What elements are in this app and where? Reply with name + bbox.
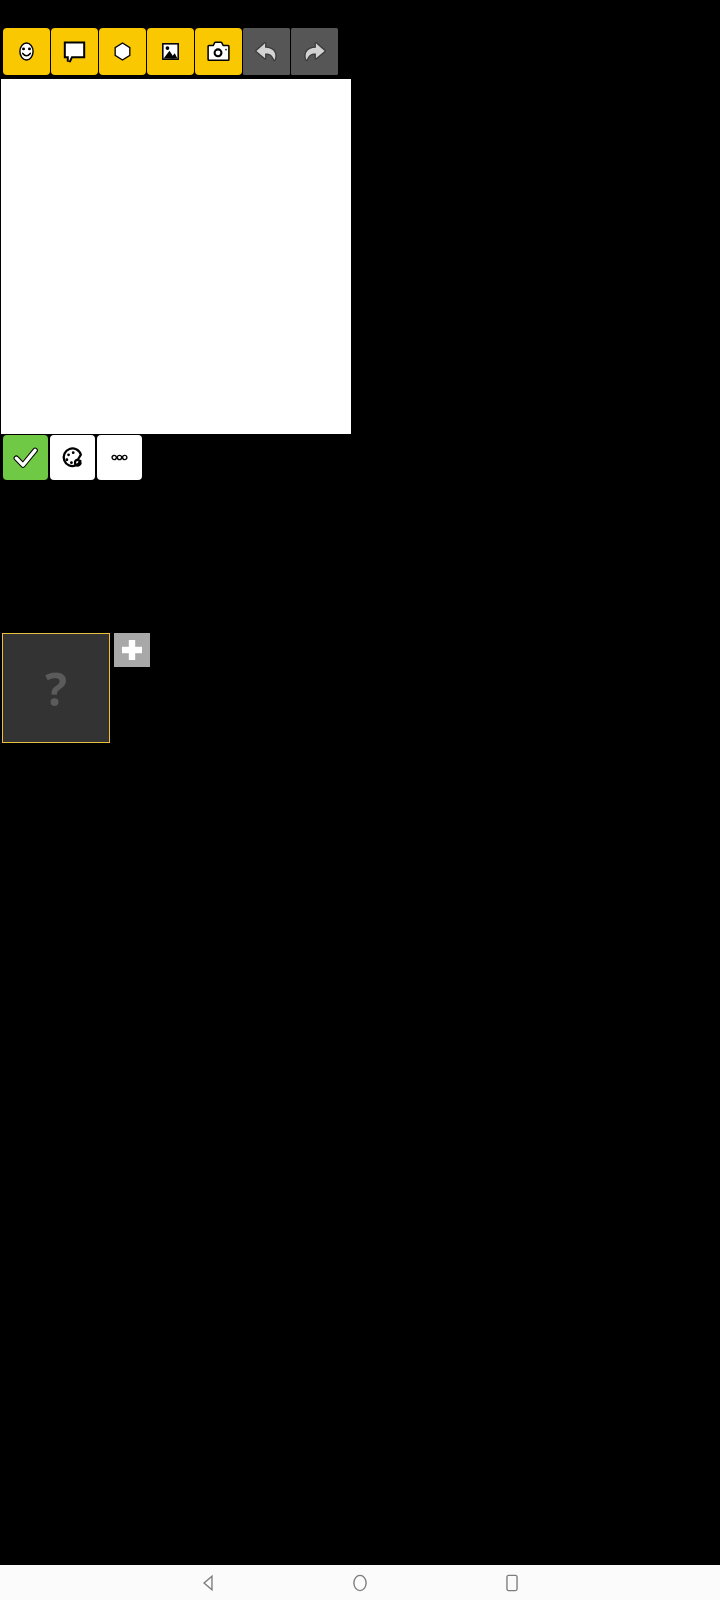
button[interactable]: Text bubble bbox=[51, 28, 98, 75]
button[interactable]: Back bbox=[182, 1565, 234, 1600]
button[interactable]: ? bbox=[2, 633, 110, 743]
staticText: ? bbox=[45, 657, 67, 720]
button[interactable]: Confirm bbox=[3, 435, 48, 480]
button[interactable]: More options bbox=[97, 435, 142, 480]
button[interactable]: Image bbox=[147, 28, 194, 75]
button[interactable]: Shape bbox=[99, 28, 146, 75]
button[interactable]: Home bbox=[334, 1565, 386, 1600]
button[interactable]: Add page bbox=[114, 633, 150, 667]
button[interactable]: Recents bbox=[486, 1565, 538, 1600]
button[interactable]: Palette bbox=[50, 435, 95, 480]
button[interactable]: Redo bbox=[291, 28, 338, 75]
button[interactable]: Undo bbox=[243, 28, 290, 75]
button[interactable]: Emoji bbox=[3, 28, 50, 75]
button[interactable]: Camera bbox=[195, 28, 242, 75]
